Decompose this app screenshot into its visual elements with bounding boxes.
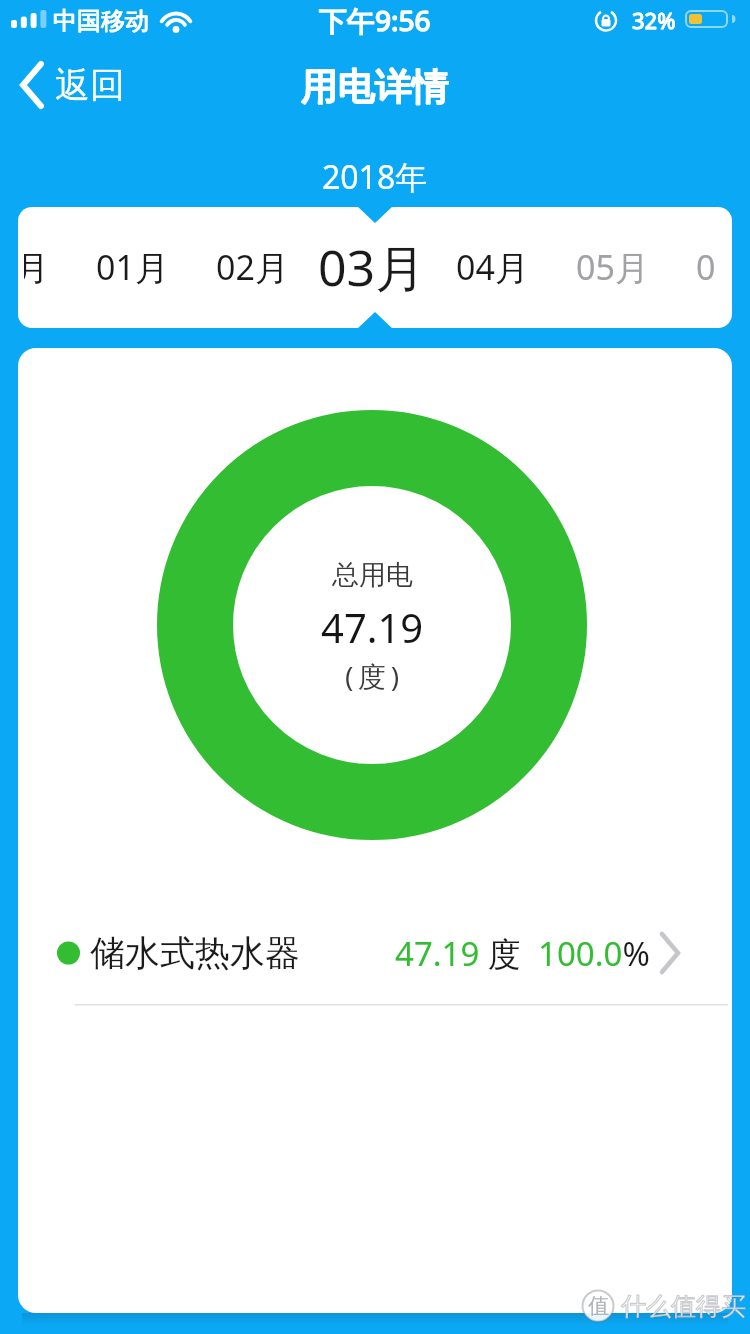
staticText: 02月 xyxy=(216,244,289,290)
staticText: 12月 xyxy=(24,244,49,290)
staticText: 2018年 xyxy=(322,155,428,199)
staticText: 返回 xyxy=(55,63,125,107)
staticText: ( 度 ) xyxy=(345,657,400,695)
staticText: 01月 xyxy=(96,244,169,290)
staticText: 06月 xyxy=(696,244,716,290)
staticText: 下午9:56 xyxy=(319,1,431,39)
staticText: 下午9:56 xyxy=(319,1,431,39)
staticText: 47.19 度 100.0% xyxy=(395,931,650,976)
staticText: 什么值得买 xyxy=(621,1291,746,1322)
staticText: 03月 xyxy=(318,233,426,301)
staticText: 总用电 xyxy=(332,558,413,592)
staticText: 04月 xyxy=(456,244,529,290)
staticText: 47.19 xyxy=(321,600,424,654)
staticText: 什么值得买 xyxy=(621,1291,746,1322)
staticText: 32% xyxy=(632,5,676,35)
staticText: 储水式热水器 xyxy=(90,931,300,975)
staticText: 32% xyxy=(632,5,676,35)
staticText: 用电详情 xyxy=(301,63,449,110)
staticText: 中国移动 xyxy=(53,6,149,36)
staticText: 用电详情 xyxy=(301,63,449,110)
staticText: 中国移动 xyxy=(53,6,149,36)
staticText: 值 xyxy=(588,1293,609,1319)
staticText: 05月 xyxy=(576,244,649,290)
